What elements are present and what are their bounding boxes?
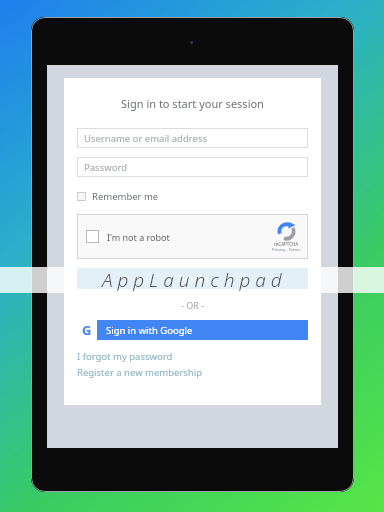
button[interactable]: Password (77, 157, 308, 177)
staticText: Sign in to start your session (77, 96, 308, 111)
other: reCAPTCHA logo (277, 222, 296, 241)
button[interactable]: G (77, 320, 308, 340)
staticText: Username or email address (84, 132, 207, 145)
button[interactable]: I'm not a robot checkbox (86, 230, 99, 243)
staticText: Privacy - Terms (272, 247, 301, 252)
button[interactable]: Remember me (77, 188, 159, 205)
button[interactable]: Register a new membership (77, 366, 203, 379)
staticText: Password (84, 161, 127, 174)
button[interactable]: Username or email address (77, 128, 308, 148)
staticText: - OR - (77, 299, 308, 311)
staticText: Sign in with Google (106, 324, 193, 337)
button[interactable]: Sign In (77, 268, 308, 289)
staticText: reCAPTCHA (274, 241, 299, 247)
staticText: A p p L a u n c h p a d (102, 267, 282, 293)
staticText: Remember me (92, 190, 159, 203)
staticText: I'm not a robot (107, 231, 170, 243)
staticText: Sign In (177, 272, 208, 285)
staticText: G (82, 321, 92, 339)
button[interactable]: I forgot my password (77, 350, 173, 363)
